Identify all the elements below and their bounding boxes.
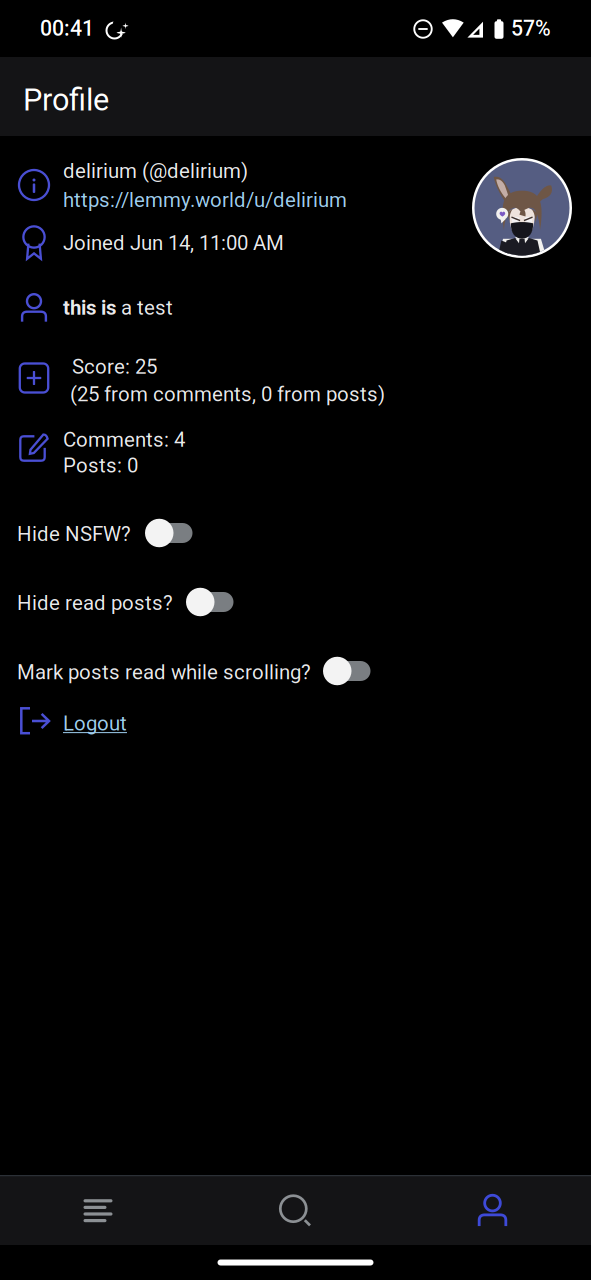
staticText: delirium (@delirium) — [63, 159, 248, 183]
staticText: (25 from comments, 0 from posts) — [70, 382, 385, 406]
staticText: Joined Jun 14, 11:00 AM — [63, 231, 284, 255]
button[interactable]: Hide read posts? — [0, 581, 591, 633]
button[interactable]: Search — [197, 1176, 394, 1245]
button[interactable]: Mark posts read while scrolling? — [0, 650, 591, 702]
staticText: 57% — [511, 16, 551, 41]
button[interactable]: Feed — [0, 1176, 197, 1245]
staticText: Logout — [63, 712, 127, 736]
staticText: 00:41 — [40, 16, 94, 41]
staticText: https://lemmy.world/u/delirium — [63, 188, 347, 212]
staticText: Hide NSFW? — [17, 522, 131, 546]
staticText: Profile — [23, 82, 109, 118]
button[interactable]: Hide NSFW? — [0, 512, 591, 564]
staticText: Mark posts read while scrolling? — [17, 660, 311, 684]
staticText: Comments: 4 — [63, 428, 185, 452]
staticText: Score: 25 — [72, 355, 157, 379]
staticText: this is a test — [63, 296, 173, 319]
button[interactable]: Profile — [394, 1176, 591, 1245]
staticText: Hide read posts? — [17, 591, 173, 615]
staticText: Posts: 0 — [63, 453, 138, 477]
button[interactable]: Logout — [0, 702, 591, 748]
